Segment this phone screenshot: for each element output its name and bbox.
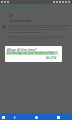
staticText: directions while navigating and improve … bbox=[8, 36, 64, 39]
staticText: Location is used to show nearby places, … bbox=[8, 34, 65, 37]
staticText: On bbox=[9, 14, 14, 18]
staticText: Location access bbox=[9, 19, 31, 23]
button[interactable]: ALLOW bbox=[46, 56, 57, 60]
staticText: Let this app use your location all the t… bbox=[7, 51, 59, 55]
button[interactable]: Recent apps bbox=[55, 114, 61, 120]
staticText: Allow all the time? bbox=[7, 47, 37, 52]
button[interactable]: Back bbox=[11, 114, 17, 120]
staticText: Allow Maps to access this device's locat… bbox=[8, 23, 71, 26]
staticText: for nearby recommendations. bbox=[8, 30, 44, 33]
button[interactable]: Switch keyboard bbox=[1, 115, 5, 119]
staticText: results in this application. bbox=[8, 39, 38, 42]
staticText: App permissions bbox=[9, 5, 41, 10]
staticText: track of where you go in the background … bbox=[8, 27, 68, 30]
staticText: ALLOW bbox=[46, 56, 57, 60]
staticText: you are not using the app? This lets the… bbox=[8, 25, 66, 28]
button[interactable]: Home bbox=[33, 114, 39, 120]
button[interactable]: Navigate up bbox=[0, 3, 8, 12]
